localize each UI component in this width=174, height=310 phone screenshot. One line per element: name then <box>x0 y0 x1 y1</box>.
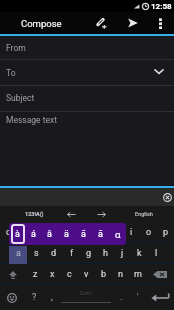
button[interactable]: ã <box>75 223 92 245</box>
button[interactable]: k <box>131 243 148 264</box>
button[interactable]: s <box>27 243 45 264</box>
staticText: . <box>120 292 123 303</box>
button[interactable]: j <box>114 243 131 264</box>
button[interactable]: Attach <box>88 12 112 34</box>
button[interactable]: ' <box>130 285 146 310</box>
button[interactable]: . <box>113 285 129 310</box>
button[interactable]: o <box>140 222 157 243</box>
staticText: c <box>67 269 72 280</box>
staticText: , <box>51 292 53 303</box>
button[interactable]: ? <box>24 285 44 310</box>
staticText: e <box>43 227 48 238</box>
button[interactable]: m <box>129 264 146 285</box>
staticText: b <box>101 269 107 280</box>
button[interactable]: u <box>106 222 123 243</box>
button[interactable]: 123!A() <box>18 206 50 222</box>
staticText: ä <box>64 229 69 240</box>
staticText: Subject <box>6 93 35 103</box>
staticText: d <box>51 248 57 259</box>
button[interactable]: n <box>112 264 129 285</box>
button[interactable]: d <box>45 243 63 264</box>
button[interactable]: Backspace <box>146 264 174 285</box>
staticText: a <box>16 248 21 259</box>
button[interactable]: b <box>95 264 112 285</box>
staticText: o <box>146 227 152 238</box>
button[interactable]: r <box>54 222 72 243</box>
staticText: English <box>135 211 153 217</box>
button[interactable]: Previous <box>62 206 80 222</box>
button[interactable]: Space <box>60 285 112 310</box>
button[interactable]: Enter <box>146 285 174 310</box>
staticText: i <box>130 227 133 238</box>
button[interactable]: z <box>26 264 44 285</box>
button[interactable]: Shift <box>0 264 26 285</box>
button[interactable]: Send <box>121 12 144 34</box>
staticText: t <box>79 227 82 238</box>
button[interactable]: From <box>0 36 174 59</box>
staticText: ã <box>81 229 86 240</box>
staticText: f <box>70 248 74 259</box>
staticText: â <box>47 229 52 240</box>
button[interactable]: English <box>130 206 158 222</box>
staticText: x <box>50 269 55 280</box>
button[interactable]: f <box>63 243 80 264</box>
button[interactable]: x <box>44 264 61 285</box>
staticText: s <box>34 248 39 259</box>
staticText: u <box>112 227 117 238</box>
button[interactable]: á <box>25 223 41 245</box>
staticText: From <box>6 43 26 53</box>
button[interactable]: t <box>72 222 89 243</box>
button[interactable]: i <box>123 222 140 243</box>
button[interactable]: Subject <box>0 86 174 111</box>
staticText: Dutch <box>80 291 92 296</box>
button[interactable]: , <box>44 285 60 310</box>
staticText: ɑ <box>115 228 121 240</box>
staticText: y <box>95 227 100 238</box>
staticText: Message text <box>6 115 57 125</box>
staticText: 12:58 <box>151 2 172 11</box>
button[interactable]: â <box>41 223 58 245</box>
button[interactable]: Emoji <box>0 285 24 310</box>
button[interactable]: Hide keyboard <box>160 190 174 204</box>
staticText: ā <box>98 229 103 240</box>
staticText: ' <box>137 292 139 303</box>
staticText: l <box>155 248 158 259</box>
button[interactable]: c <box>61 264 78 285</box>
staticText: n <box>118 269 123 280</box>
staticText: á <box>31 229 36 240</box>
button[interactable]: à <box>9 223 25 245</box>
staticText: ? <box>32 292 37 303</box>
staticText: w <box>24 227 31 238</box>
staticText: p <box>163 227 169 238</box>
staticText: m <box>134 269 142 280</box>
staticText: To <box>6 68 16 78</box>
button[interactable]: v <box>78 264 95 285</box>
button[interactable]: a <box>9 243 27 264</box>
button[interactable]: h <box>97 243 114 264</box>
button[interactable]: g <box>80 243 97 264</box>
button[interactable]: q <box>0 222 18 243</box>
button[interactable]: ɑ <box>109 223 126 245</box>
staticText: v <box>84 269 89 280</box>
staticText: à <box>15 229 20 240</box>
button[interactable]: p <box>157 222 174 243</box>
button[interactable]: To <box>0 60 174 85</box>
staticText: r <box>61 227 65 238</box>
staticText: k <box>137 248 142 259</box>
button[interactable]: ā <box>92 223 109 245</box>
button[interactable]: Message text <box>0 112 174 142</box>
button[interactable]: e <box>36 222 54 243</box>
staticText: q <box>6 227 12 238</box>
staticText: z <box>33 269 38 280</box>
staticText: 123!A() <box>25 211 44 217</box>
button[interactable]: y <box>89 222 106 243</box>
staticText: j <box>121 248 124 259</box>
button[interactable]: More options <box>150 12 171 34</box>
button[interactable]: Next <box>92 206 110 222</box>
button[interactable]: w <box>18 222 36 243</box>
staticText: Compose <box>21 18 62 29</box>
staticText: h <box>103 248 108 259</box>
button[interactable]: ä <box>58 223 75 245</box>
button[interactable]: l <box>148 243 165 264</box>
staticText: g <box>86 248 92 259</box>
